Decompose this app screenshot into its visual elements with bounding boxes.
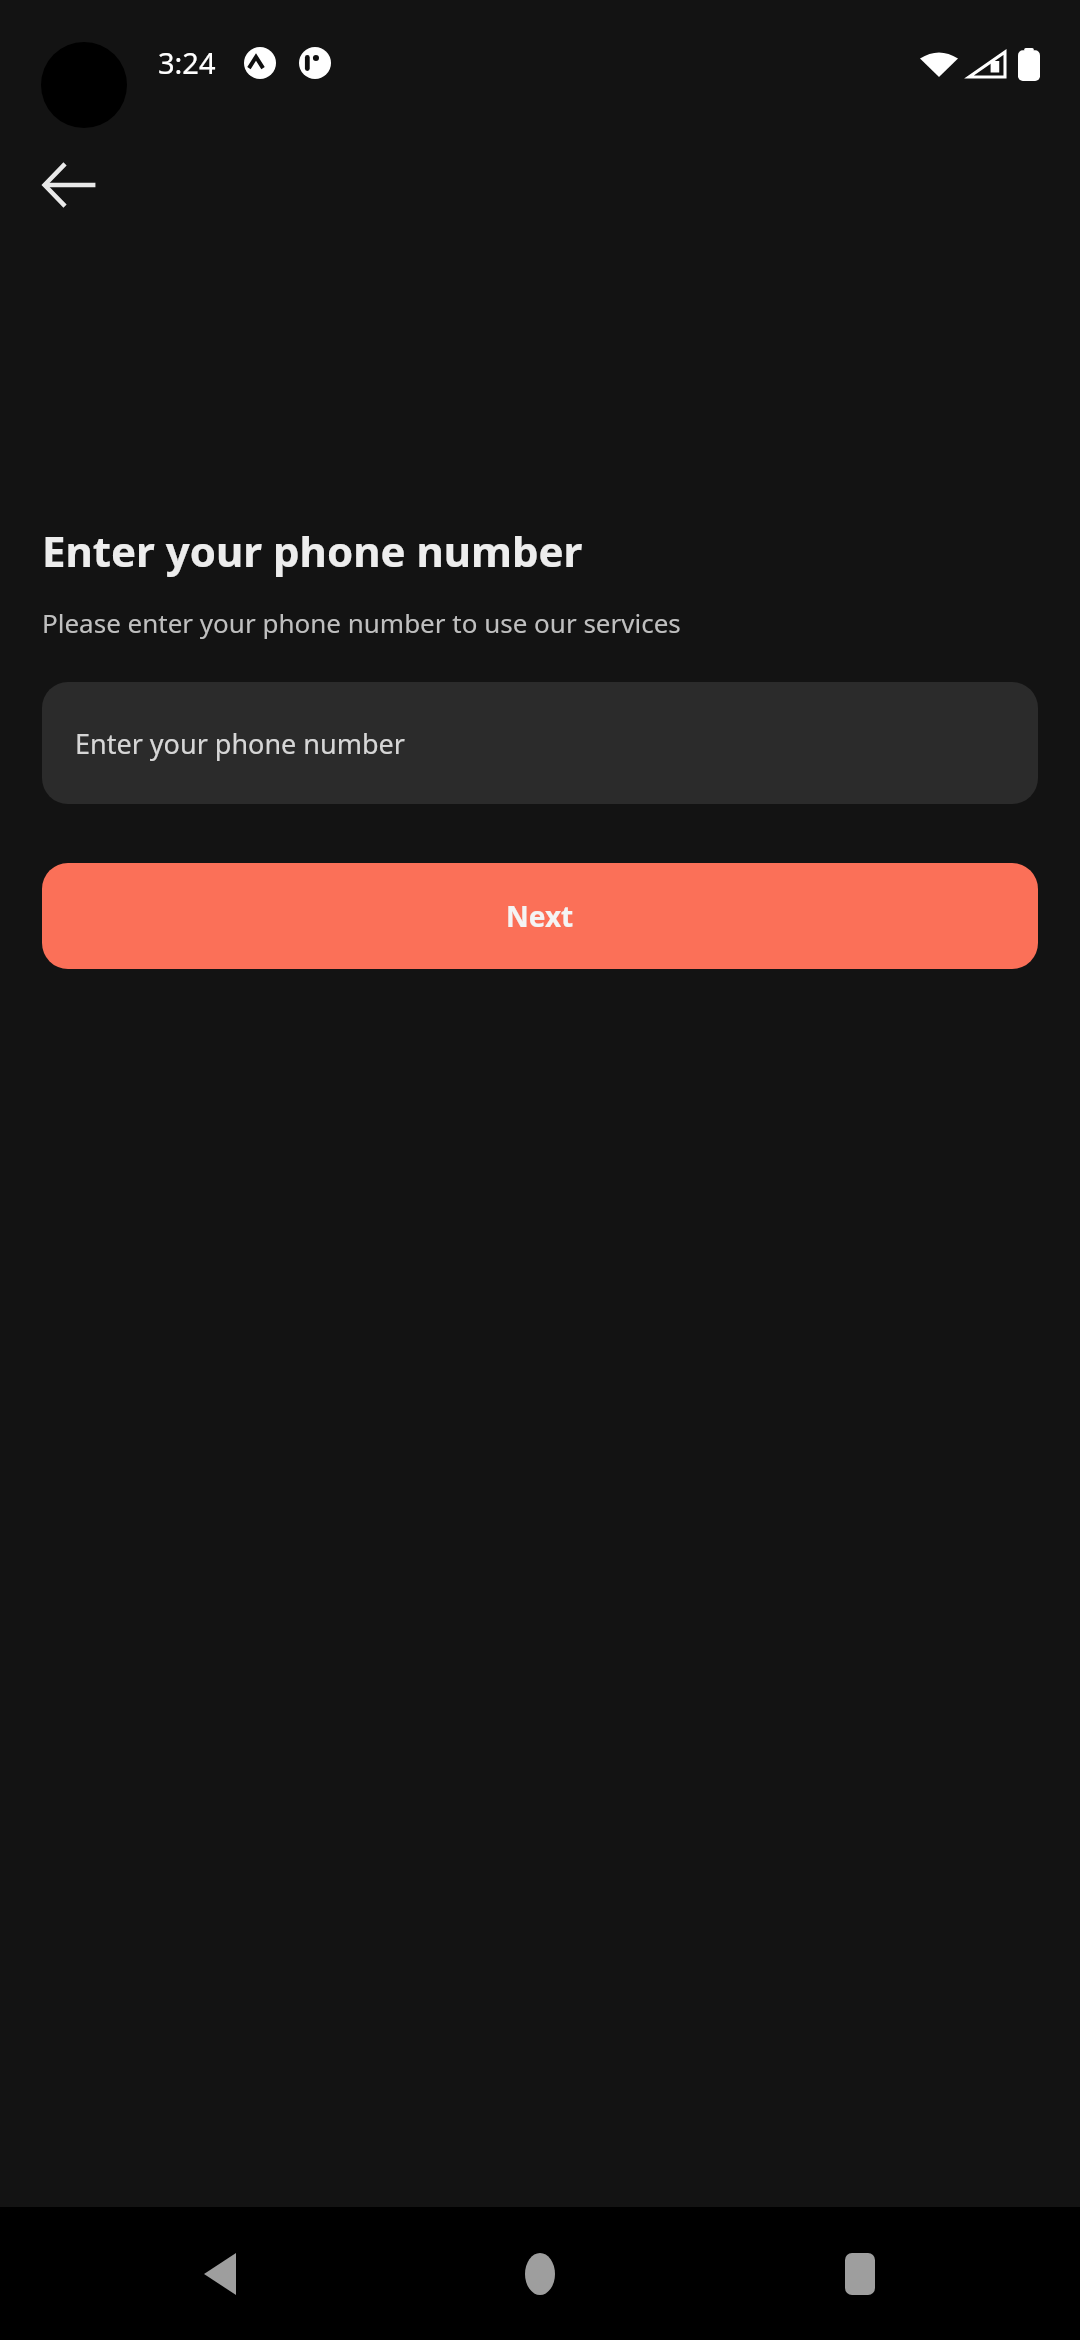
button[interactable]: Recent apps <box>760 2207 960 2340</box>
staticText: Enter your phone number <box>42 522 583 579</box>
staticText: Enter your phone number <box>75 725 405 762</box>
staticText: 3:24 <box>158 43 216 82</box>
staticText: Please enter your phone number to use ou… <box>42 605 681 640</box>
button[interactable]: Navigate back <box>18 133 122 237</box>
button[interactable]: Enter your phone number <box>42 682 1038 804</box>
staticText: Next <box>506 897 574 935</box>
button[interactable]: Back <box>120 2207 320 2340</box>
button[interactable]: Next <box>42 863 1038 969</box>
button[interactable]: Home <box>440 2207 640 2340</box>
